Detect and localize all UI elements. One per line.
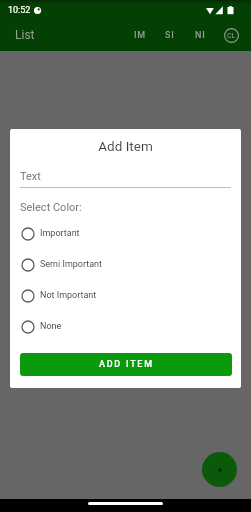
staticText: ADD ITEM — [99, 359, 154, 370]
staticText: 10:52 — [8, 5, 31, 16]
button[interactable]: IM — [125, 19, 155, 51]
staticText: NI — [195, 30, 206, 41]
button[interactable]: Clear list — [218, 19, 244, 51]
button[interactable]: Important — [20, 218, 231, 249]
staticText: IM — [134, 30, 147, 41]
button[interactable]: SI — [155, 19, 185, 51]
button[interactable]: Not Important — [20, 280, 231, 311]
staticText: Text — [20, 170, 41, 183]
staticText: Add Item — [10, 138, 241, 154]
staticText: SI — [165, 30, 175, 41]
staticText: Not Important — [40, 290, 97, 301]
button[interactable]: ADD ITEM — [20, 353, 232, 376]
staticText: Select Color: — [20, 201, 82, 214]
staticText: Important — [40, 228, 80, 239]
staticText: CL — [227, 32, 236, 40]
button[interactable]: NI — [185, 19, 215, 51]
button[interactable]: Add item — [202, 452, 237, 487]
button[interactable]: Semi Important — [20, 249, 231, 280]
button[interactable]: None — [20, 311, 231, 342]
staticText: List — [15, 28, 35, 42]
staticText: Semi Important — [40, 259, 102, 270]
staticText: None — [40, 321, 62, 332]
